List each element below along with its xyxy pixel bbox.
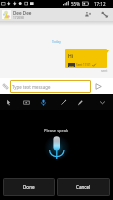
staticText: Done — [23, 184, 35, 190]
staticText: Hi — [68, 53, 74, 60]
button[interactable]: Hi — [65, 49, 107, 68]
staticText: sent — [101, 69, 108, 73]
button[interactable]: Done — [3, 178, 55, 196]
staticText: Type text message — [12, 84, 51, 90]
staticText: Please speak — [44, 128, 69, 133]
staticText: 17:12 — [94, 1, 106, 7]
button[interactable]: Voice input — [35, 94, 51, 110]
button[interactable]: Pen — [55, 94, 71, 110]
button[interactable]: Brush — [72, 94, 88, 110]
staticText: SMS — [69, 64, 74, 67]
staticText: 55% — [71, 1, 80, 7]
button[interactable]: Hide keyboard — [94, 94, 110, 110]
button[interactable]: Send — [92, 80, 104, 92]
staticText: Cancel — [76, 184, 91, 190]
button[interactable]: Camera — [18, 94, 34, 110]
button[interactable]: Call — [98, 8, 111, 21]
staticText: Today — [52, 40, 61, 44]
button[interactable]: Handwriting — [0, 94, 16, 110]
staticText: Dee Dee — [13, 10, 32, 16]
staticText: 172698 — [13, 16, 24, 20]
button[interactable]: Add contact — [81, 8, 94, 21]
button[interactable]: Cancel — [57, 178, 110, 196]
button[interactable]: Attach — [0, 81, 11, 92]
button[interactable]: Type text message — [10, 80, 91, 93]
staticText: Sent 17:01 — [76, 63, 91, 67]
